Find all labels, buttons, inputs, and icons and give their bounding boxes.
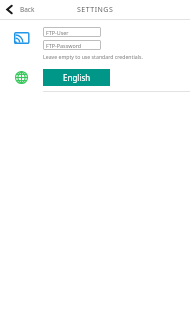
staticText: Back	[20, 5, 35, 14]
button[interactable]: Language	[14, 70, 29, 85]
staticText: FTP-Password	[46, 42, 82, 49]
staticText: English	[63, 72, 91, 83]
button[interactable]: Cast / FTP server	[13, 30, 30, 47]
staticText: SETTINGS	[77, 5, 114, 15]
button[interactable]: FTP-User	[43, 27, 101, 37]
staticText: FTP-User	[46, 29, 69, 36]
button[interactable]: FTP-Password	[43, 40, 101, 50]
button[interactable]: Back	[0, 0, 43, 19]
staticText: Leave empty to use standard credentials.	[43, 53, 143, 60]
button[interactable]: English	[43, 69, 110, 86]
